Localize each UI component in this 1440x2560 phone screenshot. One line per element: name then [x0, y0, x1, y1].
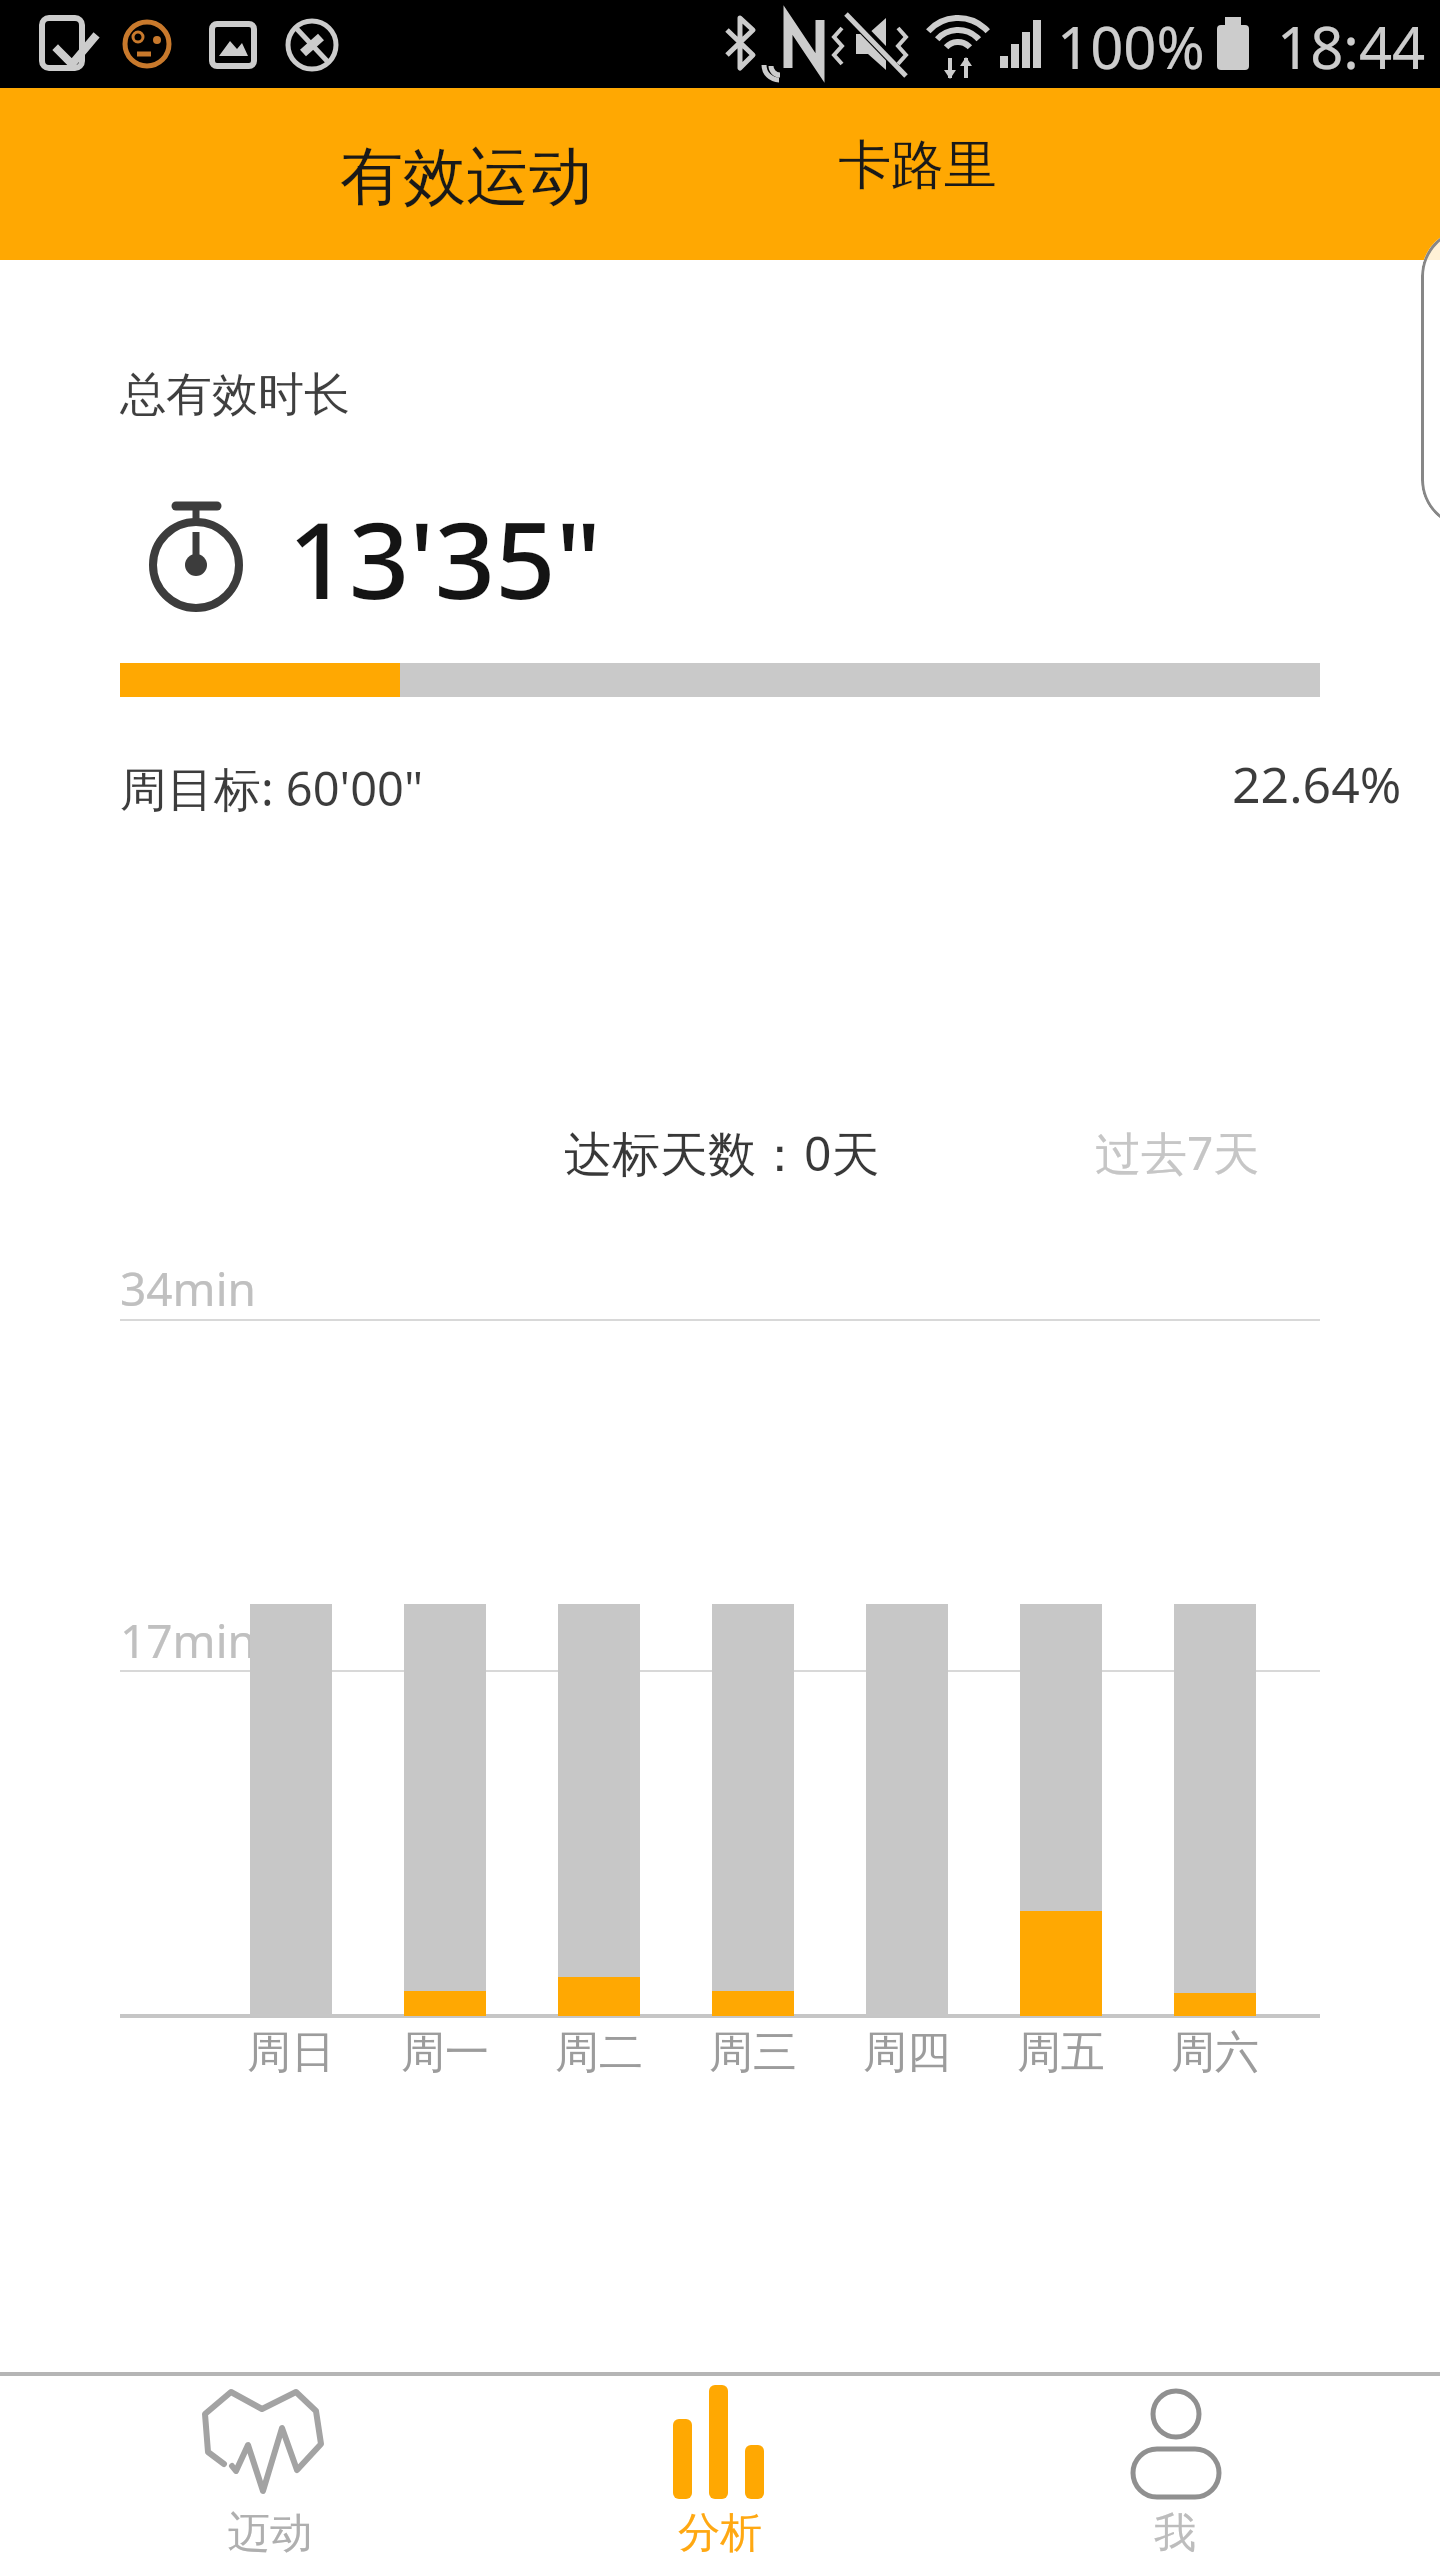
staticText: 34min [120, 1257, 256, 1320]
staticText: 达标天数：0天 [564, 1120, 880, 1186]
staticText: 周二 [555, 2025, 643, 2080]
button[interactable]: 有效运动 [330, 96, 602, 256]
staticText: 周五 [1017, 2025, 1105, 2080]
staticText: 总有效时长 [120, 366, 350, 424]
button[interactable]: 分析 [600, 2378, 840, 2560]
staticText: 迈动 [228, 2507, 312, 2560]
staticText: 18:44 [1277, 7, 1426, 86]
staticText: 周三 [709, 2025, 797, 2080]
staticText: 周目标: 60'00" [120, 756, 424, 820]
staticText: 13'35" [288, 486, 602, 626]
staticText: 过去7天 [1095, 1121, 1260, 1184]
staticText: 我 [1154, 2507, 1196, 2560]
button[interactable]: 卡路里 [827, 90, 1007, 240]
staticText: 周四 [863, 2025, 951, 2080]
staticText: 分析 [678, 2507, 762, 2560]
button[interactable]: 我 [1060, 2378, 1290, 2560]
staticText: 周日 [247, 2025, 335, 2080]
staticText: 周六 [1171, 2025, 1259, 2080]
button[interactable]: 迈动 [150, 2378, 390, 2560]
staticText: 17min [120, 1609, 256, 1672]
staticText: 周一 [401, 2025, 489, 2080]
staticText: 22.64% [1232, 750, 1402, 818]
staticText: 有效运动 [340, 137, 592, 216]
staticText: 卡路里 [838, 132, 997, 199]
staticText: 100% [1057, 7, 1205, 86]
